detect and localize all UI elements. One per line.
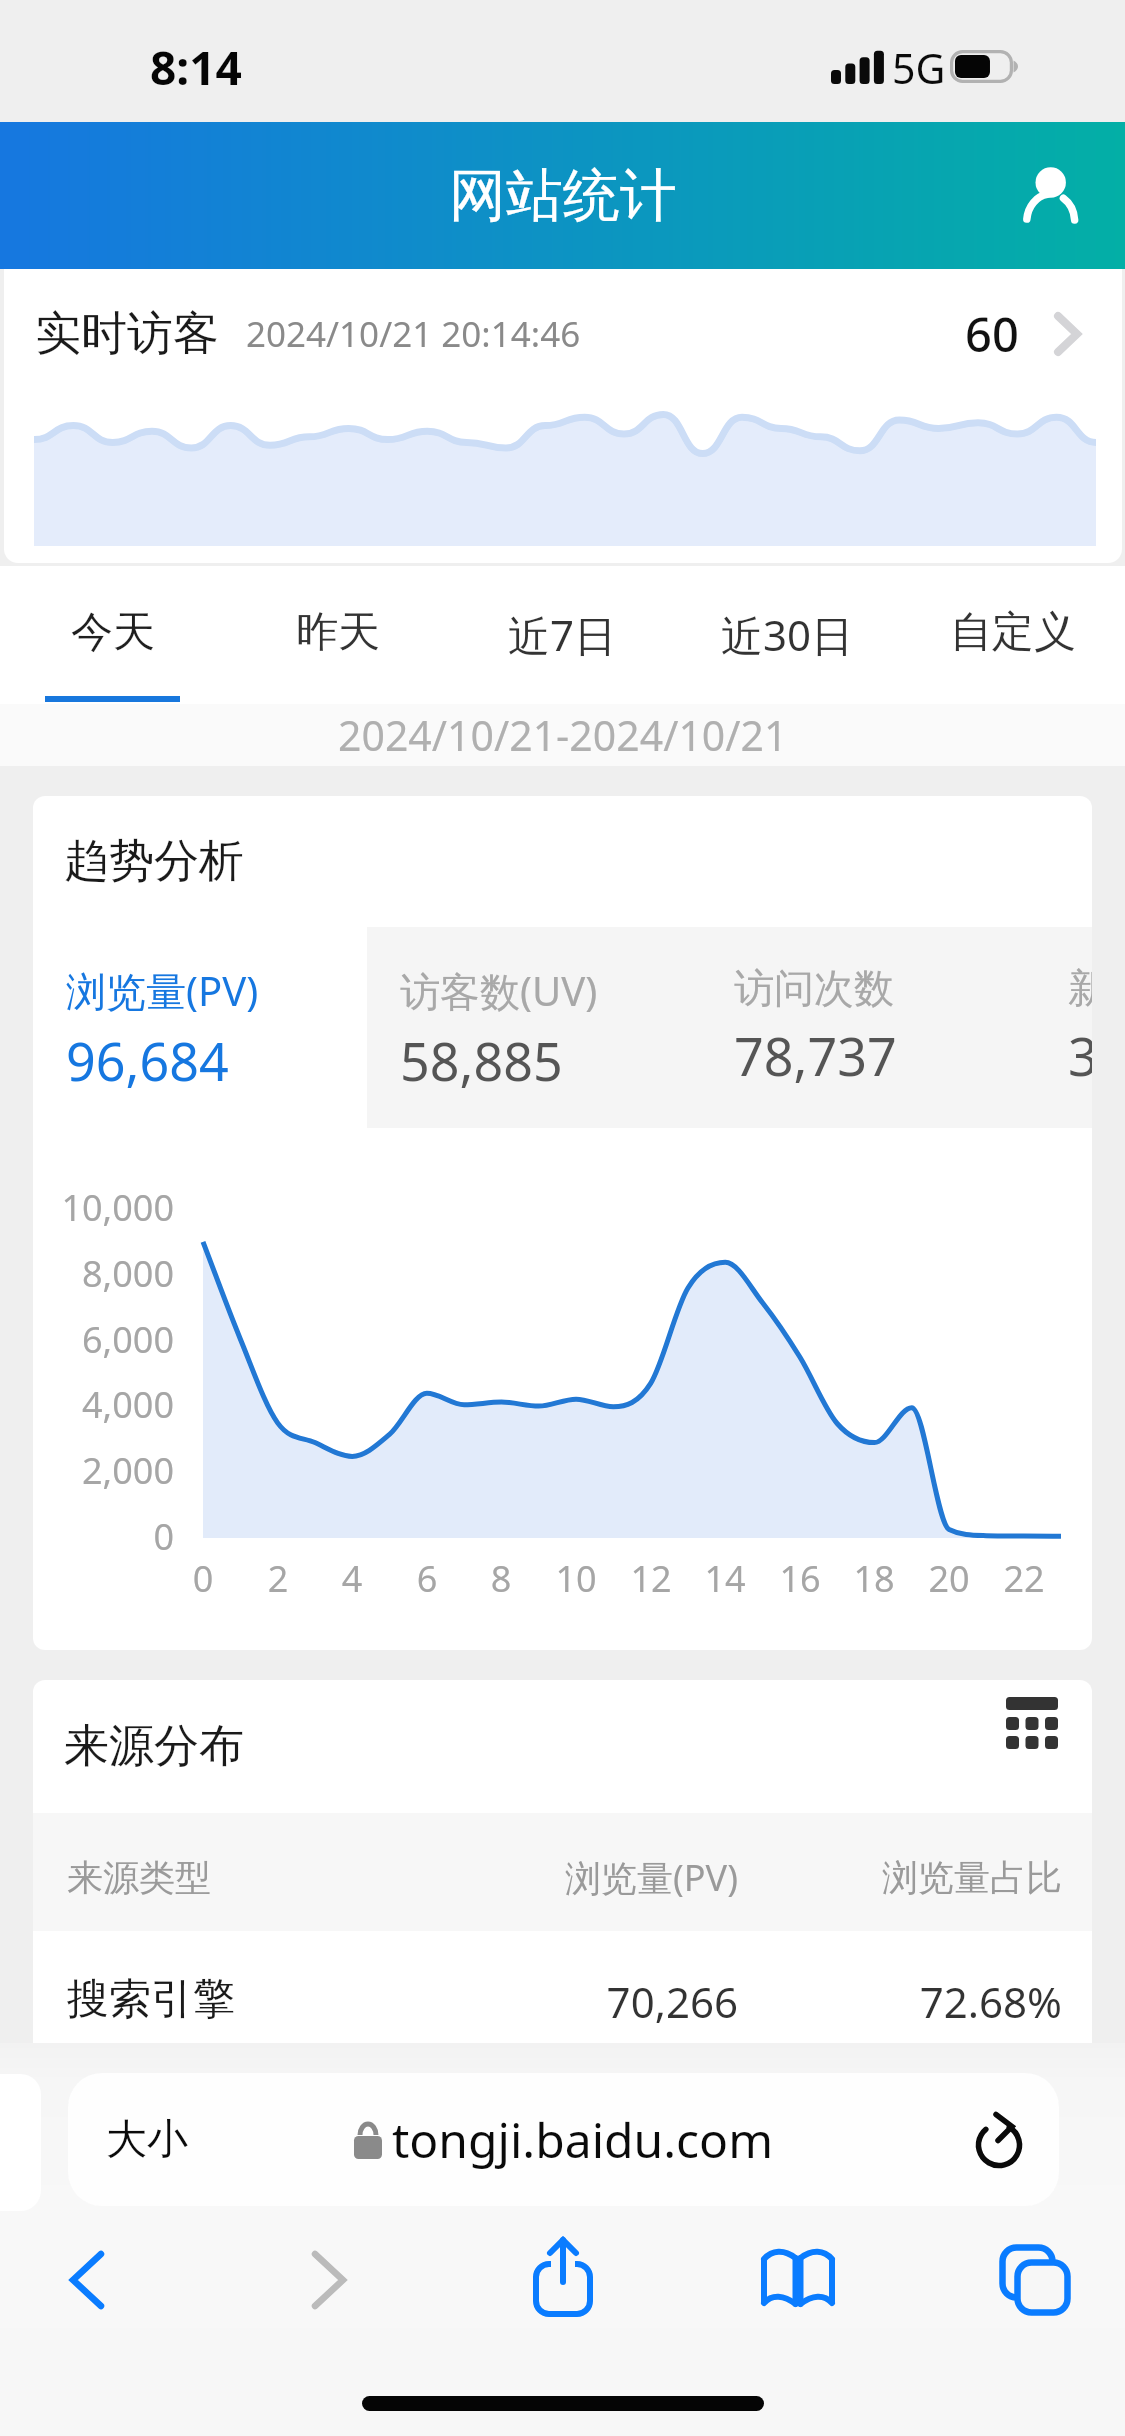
staticText: 0 bbox=[33, 1512, 174, 1561]
staticText: 6 bbox=[397, 1554, 457, 1603]
staticText: 4 bbox=[322, 1554, 382, 1603]
staticText: 浏览量占比 bbox=[738, 1855, 1062, 1900]
button[interactable]: Reload bbox=[965, 2104, 1037, 2176]
staticText: 2 bbox=[248, 1554, 308, 1603]
staticText: 搜索引擎 bbox=[67, 1973, 397, 2026]
staticText: 20 bbox=[919, 1554, 979, 1603]
staticText: 18 bbox=[844, 1554, 904, 1603]
staticText: 昨天 bbox=[296, 606, 380, 659]
button[interactable]: 访客数(UV) bbox=[367, 927, 701, 1128]
button[interactable]: Tabs bbox=[979, 2205, 1091, 2355]
staticText: 22 bbox=[994, 1554, 1054, 1603]
button[interactable]: 昨天 bbox=[225, 566, 450, 704]
staticText: 2024/10/21-2024/10/21 bbox=[338, 707, 788, 763]
staticText: 78,737 bbox=[734, 1020, 897, 1091]
staticText: 网站统计 bbox=[449, 160, 677, 232]
staticText: 8 bbox=[471, 1554, 531, 1603]
staticText: 2024/10/21 20:14:46 bbox=[246, 310, 581, 358]
staticText: 近30日 bbox=[721, 606, 854, 663]
button[interactable]: Table view bbox=[989, 1680, 1075, 1766]
staticText: 8,000 bbox=[33, 1249, 174, 1298]
staticText: 实时访客 bbox=[35, 305, 219, 363]
button[interactable]: Back bbox=[31, 2205, 143, 2355]
button[interactable]: 浏览量(PV) bbox=[33, 927, 367, 1128]
staticText: 自定义 bbox=[950, 606, 1076, 659]
staticText: 3 bbox=[1068, 1020, 1092, 1091]
button[interactable]: Bookmarks bbox=[742, 2205, 854, 2355]
button[interactable]: 搜索引擎 bbox=[33, 1931, 1092, 2053]
staticText: 近7日 bbox=[508, 606, 617, 663]
staticText: tongji.baidu.com bbox=[392, 2107, 774, 2172]
button[interactable]: 新 bbox=[1035, 927, 1092, 1128]
staticText: 8:14 bbox=[150, 36, 242, 99]
button[interactable]: Forward bbox=[273, 2205, 385, 2355]
staticText: 6,000 bbox=[33, 1315, 174, 1364]
staticText: 浏览量(PV) bbox=[397, 1853, 738, 1902]
staticText: 大小 bbox=[106, 2114, 188, 2166]
staticText: 新 bbox=[1068, 963, 1092, 1013]
button[interactable]: 近30日 bbox=[675, 566, 900, 704]
button[interactable]: 2024/10/21-2024/10/21 bbox=[0, 704, 1125, 766]
staticText: 72.68% bbox=[738, 1973, 1062, 2030]
staticText: 2,000 bbox=[33, 1446, 174, 1495]
button[interactable]: Account bbox=[1002, 146, 1100, 244]
staticText: 60 bbox=[965, 302, 1019, 366]
staticText: 10,000 bbox=[33, 1183, 174, 1232]
staticText: 今天 bbox=[71, 606, 155, 659]
staticText: 58,885 bbox=[400, 1025, 563, 1096]
staticText: 访问次数 bbox=[734, 963, 894, 1013]
staticText: 5G bbox=[892, 40, 946, 96]
staticText: 16 bbox=[770, 1554, 830, 1603]
button[interactable]: 自定义 bbox=[900, 566, 1125, 704]
staticText: 96,684 bbox=[66, 1025, 229, 1096]
button[interactable]: 实时访客 bbox=[4, 269, 1122, 563]
staticText: 访客数(UV) bbox=[400, 963, 598, 1018]
staticText: 0 bbox=[173, 1554, 233, 1603]
button[interactable]: 大小 bbox=[68, 2073, 1059, 2206]
button[interactable]: 今天 bbox=[0, 566, 225, 704]
staticText: 4,000 bbox=[33, 1380, 174, 1429]
staticText: 12 bbox=[621, 1554, 681, 1603]
staticText: 14 bbox=[695, 1554, 755, 1603]
staticText: 10 bbox=[546, 1554, 606, 1603]
staticText: 趋势分析 bbox=[64, 833, 244, 890]
button[interactable]: Share bbox=[507, 2205, 619, 2355]
staticText: 来源分布 bbox=[64, 1718, 244, 1775]
staticText: 70,266 bbox=[397, 1973, 738, 2030]
staticText: 来源类型 bbox=[67, 1855, 397, 1900]
button[interactable]: 近7日 bbox=[450, 566, 675, 704]
staticText: 浏览量(PV) bbox=[66, 963, 259, 1018]
button[interactable]: 访问次数 bbox=[701, 927, 1035, 1128]
